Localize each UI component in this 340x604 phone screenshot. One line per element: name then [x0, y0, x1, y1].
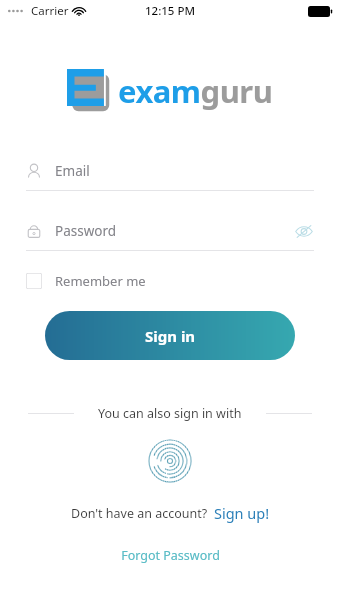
- button[interactable]: Sign up!: [214, 503, 270, 523]
- staticText: Remember me: [55, 272, 146, 290]
- button[interactable]: Forgot Password: [107, 544, 234, 567]
- staticText: Don't have an account?: [71, 505, 208, 522]
- button[interactable]: Email field: [26, 157, 314, 191]
- button[interactable]: Sign in with fingerprint: [148, 439, 192, 483]
- staticText: Email: [55, 162, 90, 180]
- button[interactable]: Remember me: [26, 272, 314, 290]
- staticText: Password: [55, 222, 117, 240]
- button[interactable]: Sign in: [45, 311, 295, 360]
- button[interactable]: Password field: [26, 217, 314, 251]
- staticText: Sign in: [145, 326, 196, 346]
- staticText: Forgot Password: [121, 547, 220, 564]
- staticText: 12:15 PM: [145, 3, 196, 19]
- staticText: examguru: [118, 70, 273, 112]
- staticText: Carrier: [31, 3, 69, 19]
- button[interactable]: Show password: [294, 221, 314, 241]
- staticText: You can also sign in with: [98, 405, 242, 422]
- staticText: Sign up!: [214, 503, 270, 523]
